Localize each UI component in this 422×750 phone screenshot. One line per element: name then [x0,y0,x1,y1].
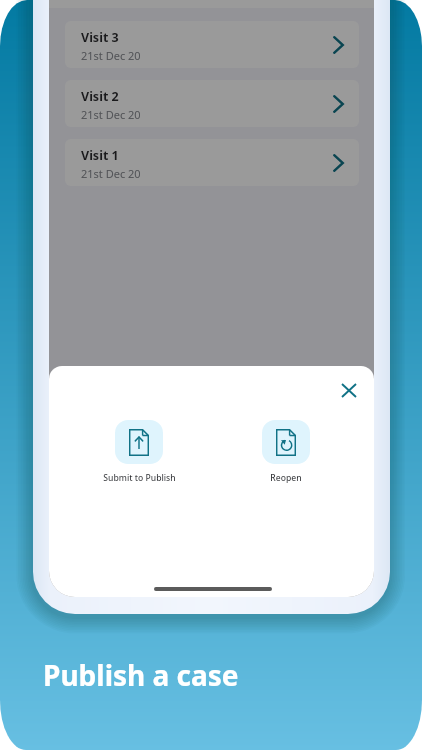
staticText: Visit 1 [81,147,119,164]
button[interactable]: Close [332,373,366,407]
button[interactable]: Reopen [230,420,342,484]
button[interactable]: Visit 2 [65,80,359,127]
button[interactable]: Submit to Publish [83,420,195,484]
staticText: Reopen [270,472,302,484]
staticText: Publish a case [43,656,239,694]
button[interactable]: Visit 1 [65,139,359,186]
staticText: 21st Dec 20 [81,107,141,122]
staticText: 21st Dec 20 [81,166,141,181]
staticText: Visit 2 [81,88,119,105]
staticText: 21st Dec 20 [81,48,141,63]
button[interactable]: Visit 3 [65,21,359,68]
staticText: Visit 3 [81,29,119,46]
staticText: Submit to Publish [103,472,176,484]
